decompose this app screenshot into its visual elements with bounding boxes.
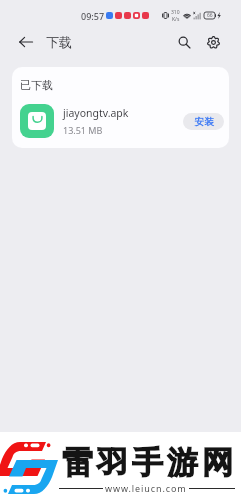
staticText: www.leiucn.com bbox=[105, 482, 187, 494]
staticText: 66 bbox=[207, 12, 213, 19]
button[interactable]: jiayongtv.apk bbox=[12, 101, 229, 141]
button[interactable]: Back bbox=[10, 25, 42, 58]
staticText: 雷羽手游网 bbox=[60, 443, 235, 482]
staticText: 已下载 bbox=[20, 78, 53, 92]
button[interactable]: Search bbox=[170, 28, 198, 56]
staticText: jiayongtv.apk bbox=[63, 106, 129, 120]
staticText: 下载 bbox=[46, 34, 72, 50]
button[interactable]: 安装 bbox=[183, 113, 224, 130]
staticText: 09:57 bbox=[81, 10, 105, 22]
staticText: 安装 bbox=[194, 116, 214, 128]
staticText: 13.51 MB bbox=[63, 124, 103, 136]
staticText: 310 bbox=[171, 9, 180, 16]
staticText: K/s bbox=[172, 16, 180, 23]
button[interactable]: Settings bbox=[199, 28, 227, 56]
